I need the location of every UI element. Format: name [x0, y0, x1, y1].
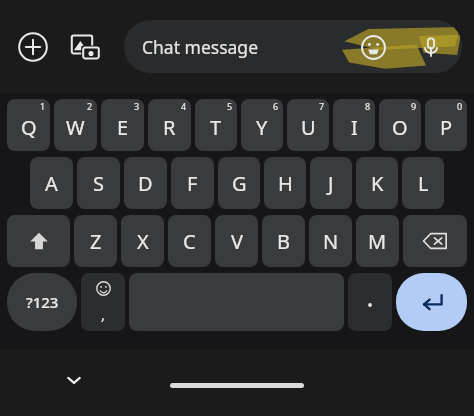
staticText: Y [256, 114, 268, 141]
button[interactable]: N [309, 215, 352, 267]
staticText: 7 [319, 100, 325, 112]
staticText: 3 [134, 100, 140, 112]
staticText: 4 [181, 100, 187, 112]
button[interactable] [348, 273, 392, 331]
staticText: Chat message [142, 35, 259, 59]
button[interactable]: Y [241, 99, 283, 151]
button[interactable]: F [171, 157, 214, 209]
button[interactable]: K [356, 157, 398, 209]
button[interactable]: R [148, 99, 191, 151]
staticText: C [183, 228, 196, 255]
staticText: X [137, 228, 149, 255]
button[interactable]: Hide keyboard [54, 360, 94, 400]
button[interactable]: Enter [396, 273, 467, 331]
staticText: F [187, 170, 198, 197]
button[interactable]: W [54, 99, 97, 151]
button[interactable]: J [310, 157, 352, 209]
button[interactable]: Backspace [403, 215, 467, 267]
staticText: A [45, 170, 58, 197]
button[interactable]: I [333, 99, 375, 151]
button[interactable]: H [264, 157, 306, 209]
button[interactable]: L [402, 157, 444, 209]
staticText: W [66, 114, 85, 141]
button[interactable]: G [218, 157, 260, 209]
staticText: T [210, 114, 222, 141]
staticText: U [301, 114, 316, 141]
staticText: E [117, 114, 129, 141]
staticText: V [231, 228, 243, 255]
staticText: Q [21, 114, 37, 141]
button[interactable]: X [121, 215, 164, 267]
button[interactable]: Emoji [358, 32, 388, 62]
button[interactable]: Z [74, 215, 117, 267]
button[interactable]: O [379, 99, 421, 151]
staticText: R [163, 114, 176, 141]
button[interactable]: B [262, 215, 305, 267]
button[interactable]: Add attachment [16, 30, 50, 64]
staticText: 0 [457, 100, 463, 112]
staticText: K [371, 170, 384, 197]
button[interactable]: M [356, 215, 399, 267]
staticText: 6 [273, 100, 279, 112]
staticText: P [440, 114, 453, 141]
staticText: L [418, 170, 429, 197]
button[interactable]: D [124, 157, 167, 209]
button[interactable]: Shift [7, 215, 70, 267]
button[interactable]: P [425, 99, 467, 151]
button[interactable]: Q [7, 99, 50, 151]
staticText: S [93, 170, 104, 197]
staticText: Z [90, 228, 102, 255]
button[interactable]: S [77, 157, 120, 209]
staticText: G [232, 170, 247, 197]
staticText: 8 [365, 100, 371, 112]
button[interactable]: Chat message [124, 20, 462, 73]
staticText: B [277, 228, 290, 255]
staticText: M [368, 228, 387, 255]
staticText: 1 [40, 100, 46, 112]
staticText: ?123 [26, 292, 59, 312]
button[interactable]: Voice input [416, 32, 446, 62]
button[interactable]: ?123 [7, 273, 77, 331]
staticText: D [138, 170, 153, 197]
staticText: O [392, 114, 408, 141]
button[interactable]: A [30, 157, 73, 209]
staticText: J [328, 170, 334, 197]
staticText: 5 [227, 100, 233, 112]
staticText: 2 [87, 100, 93, 112]
button[interactable]: C [168, 215, 211, 267]
staticText: , [101, 304, 106, 324]
button[interactable]: V [215, 215, 258, 267]
button[interactable]: U [287, 99, 329, 151]
staticText: H [278, 170, 293, 197]
button[interactable]: E [101, 99, 144, 151]
button[interactable]: T [195, 99, 237, 151]
staticText: 9 [411, 100, 417, 112]
button[interactable]: Emoji keyboard [81, 273, 125, 331]
staticText: N [323, 228, 339, 255]
button[interactable]: Gallery and camera [68, 30, 102, 64]
staticText: I [351, 114, 358, 141]
